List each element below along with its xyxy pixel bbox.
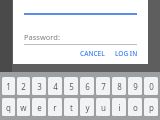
button[interactable]: y <box>80 98 94 116</box>
staticText: CANCEL <box>80 49 105 58</box>
staticText: 6 <box>85 81 90 92</box>
staticText: w <box>20 102 27 113</box>
button[interactable]: Password: <box>24 32 137 45</box>
staticText: y <box>85 102 90 113</box>
button[interactable] <box>24 2 137 15</box>
staticText: i <box>118 102 121 113</box>
staticText: 5 <box>69 81 74 92</box>
button[interactable]: u <box>96 98 110 116</box>
staticText: t <box>70 102 73 113</box>
button[interactable]: e <box>32 98 46 116</box>
button[interactable]: 1 <box>2 77 15 95</box>
staticText: 3 <box>37 81 42 92</box>
button[interactable]: p <box>144 98 158 116</box>
staticText: 0 <box>149 81 154 92</box>
button[interactable]: 9 <box>128 77 142 95</box>
button[interactable]: CANCEL <box>78 47 107 60</box>
button[interactable]: q <box>2 98 15 116</box>
staticText: p <box>149 102 154 113</box>
button[interactable]: 2 <box>17 77 30 95</box>
staticText: e <box>37 102 42 113</box>
button[interactable]: i <box>112 98 126 116</box>
button[interactable]: 4 <box>48 77 62 95</box>
button[interactable]: 3 <box>32 77 46 95</box>
staticText: 9 <box>133 81 138 92</box>
button[interactable]: 8 <box>112 77 126 95</box>
button[interactable]: t <box>64 98 78 116</box>
staticText: 4 <box>53 81 58 92</box>
staticText: u <box>101 102 106 113</box>
staticText: 1 <box>6 81 11 92</box>
button[interactable]: w <box>17 98 30 116</box>
staticText: 7 <box>101 81 106 92</box>
button[interactable]: 0 <box>144 77 158 95</box>
staticText: Password: <box>24 32 60 42</box>
button[interactable]: LOG IN <box>113 47 140 60</box>
button[interactable]: 5 <box>64 77 78 95</box>
button[interactable]: r <box>48 98 62 116</box>
button[interactable]: 6 <box>80 77 94 95</box>
staticText: q <box>6 102 11 113</box>
staticText: o <box>133 102 138 113</box>
staticText: 8 <box>117 81 122 92</box>
button[interactable]: 7 <box>96 77 110 95</box>
staticText: 2 <box>21 81 26 92</box>
staticText: LOG IN <box>115 49 138 58</box>
staticText: r <box>53 102 57 113</box>
button[interactable]: o <box>128 98 142 116</box>
